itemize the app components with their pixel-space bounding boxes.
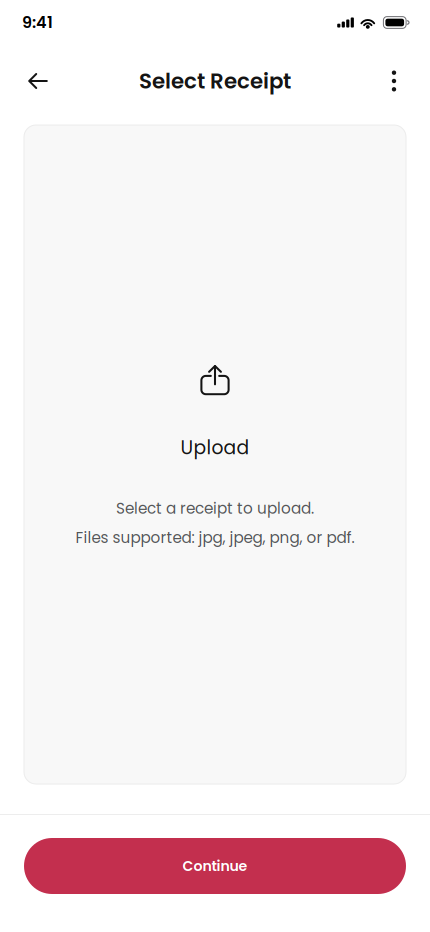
staticText: Files supported: jpg, jpeg, png, or pdf. <box>75 527 354 548</box>
staticText: 9:41 <box>22 11 53 34</box>
staticText: Upload <box>180 435 249 461</box>
button[interactable]: Upload <box>24 125 406 784</box>
button[interactable]: Back <box>16 59 60 103</box>
button[interactable]: More options <box>372 59 416 103</box>
button[interactable]: Continue <box>24 838 406 894</box>
staticText: Select Receipt <box>139 66 291 96</box>
staticText: Select a receipt to upload. <box>116 498 314 519</box>
staticText: Continue <box>182 856 247 876</box>
